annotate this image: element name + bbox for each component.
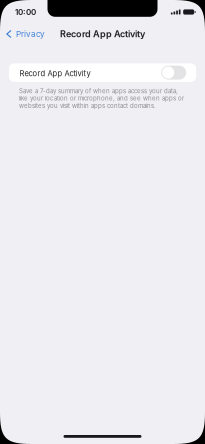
staticText: Save a 7-day summary of when apps access… [19,87,184,109]
staticText: 10:00 [15,7,36,17]
button[interactable]: Record App Activity [9,63,196,82]
staticText: Record App Activity [60,28,145,39]
button[interactable]: Privacy [0,26,50,42]
staticText: Record App Activity [19,69,90,78]
staticText: Privacy [16,29,45,39]
